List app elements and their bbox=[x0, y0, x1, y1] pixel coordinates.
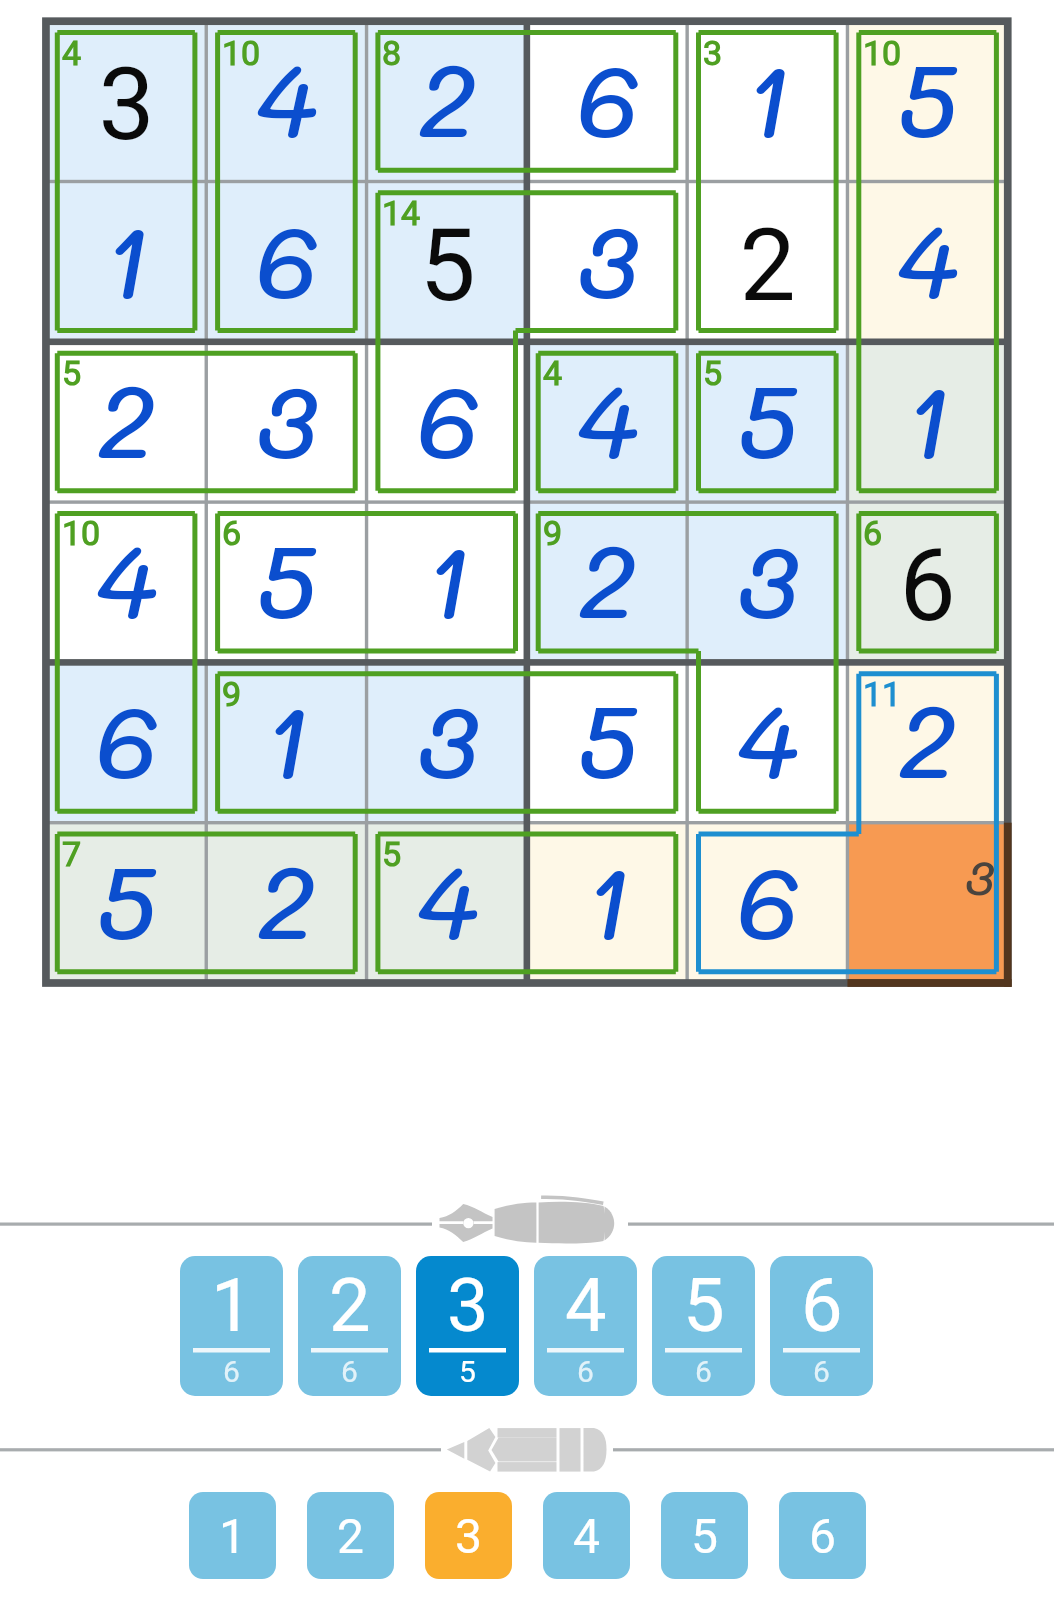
button[interactable]: 3 bbox=[206, 342, 366, 502]
button[interactable]: 2 bbox=[206, 823, 366, 983]
staticText: 6 bbox=[577, 1354, 594, 1389]
staticText: 9 bbox=[543, 513, 563, 553]
button[interactable]: 3 bbox=[687, 502, 847, 662]
staticText: 5 bbox=[691, 1508, 718, 1564]
staticText: 4 bbox=[62, 33, 82, 73]
staticText: 5 bbox=[897, 30, 958, 164]
staticText: 11 bbox=[863, 674, 902, 714]
staticText: 1 bbox=[263, 671, 309, 805]
staticText: 8 bbox=[382, 33, 402, 73]
button[interactable]: 6 bbox=[206, 182, 366, 342]
button[interactable]: 4 bbox=[687, 662, 847, 822]
staticText: 6 bbox=[341, 1354, 358, 1389]
button[interactable]: 3 bbox=[367, 662, 527, 822]
staticText: 5 bbox=[62, 353, 82, 393]
staticText: 9 bbox=[222, 674, 242, 714]
staticText: 6 bbox=[223, 1354, 240, 1389]
button[interactable]: 2 bbox=[367, 21, 527, 181]
staticText: 5 bbox=[737, 351, 798, 485]
button[interactable]: 5 bbox=[527, 662, 687, 822]
staticText: 4 bbox=[565, 1262, 607, 1349]
button[interactable]: 4 bbox=[543, 1492, 630, 1579]
staticText: 1 bbox=[103, 191, 149, 325]
staticText: 10 bbox=[222, 33, 261, 73]
button[interactable]: 5 bbox=[661, 1492, 748, 1579]
button[interactable]: 3 bbox=[425, 1492, 512, 1579]
button[interactable]: 2 bbox=[298, 1256, 401, 1396]
staticText: 2 bbox=[329, 1262, 371, 1349]
staticText: 3 bbox=[703, 33, 723, 73]
staticText: 6 bbox=[801, 1262, 843, 1349]
button[interactable]: 1 bbox=[367, 502, 527, 662]
staticText: 4 bbox=[95, 511, 158, 645]
staticText: 3 bbox=[965, 845, 994, 909]
button[interactable]: 5 bbox=[847, 21, 1007, 181]
staticText: 2 bbox=[739, 207, 796, 324]
staticText: 7 bbox=[62, 834, 82, 874]
button[interactable]: 5 bbox=[367, 182, 527, 342]
staticText: 3 bbox=[98, 46, 155, 163]
staticText: 10 bbox=[62, 513, 101, 553]
staticText: 1 bbox=[904, 351, 950, 485]
button[interactable]: 3 bbox=[46, 21, 206, 181]
button[interactable]: 1 bbox=[687, 21, 847, 181]
button[interactable]: 6 bbox=[779, 1492, 866, 1579]
staticText: 1 bbox=[584, 832, 630, 966]
staticText: 5 bbox=[459, 1354, 476, 1389]
button[interactable]: 6 bbox=[367, 342, 527, 502]
staticText: 4 bbox=[255, 30, 318, 164]
button[interactable]: 5 bbox=[652, 1256, 755, 1396]
staticText: 4 bbox=[736, 671, 799, 805]
staticText: 5 bbox=[683, 1262, 725, 1349]
staticText: 4 bbox=[416, 832, 479, 966]
button[interactable]: 1 bbox=[46, 182, 206, 342]
staticText: 5 bbox=[256, 511, 317, 645]
button[interactable]: 2 bbox=[46, 342, 206, 502]
button[interactable]: 1 bbox=[847, 342, 1007, 502]
button[interactable]: 2 bbox=[687, 182, 847, 342]
staticText: 6 bbox=[222, 513, 242, 553]
staticText: 1 bbox=[211, 1262, 253, 1349]
button[interactable]: 3 bbox=[416, 1256, 519, 1396]
staticText: 1 bbox=[219, 1508, 246, 1564]
button[interactable]: 6 bbox=[687, 823, 847, 983]
button[interactable]: 6 bbox=[770, 1256, 873, 1396]
button[interactable]: 6 bbox=[46, 662, 206, 822]
button[interactable]: 6 bbox=[527, 21, 687, 181]
button[interactable]: 2 bbox=[307, 1492, 394, 1579]
button[interactable]: 3 bbox=[527, 182, 687, 342]
staticText: 6 bbox=[95, 671, 158, 805]
staticText: 4 bbox=[573, 1508, 600, 1564]
button[interactable]: 1 bbox=[180, 1256, 283, 1396]
button[interactable]: 4 bbox=[367, 823, 527, 983]
button[interactable]: 6 bbox=[847, 502, 1007, 662]
staticText: 5 bbox=[577, 671, 638, 805]
staticText: 2 bbox=[257, 832, 315, 966]
staticText: 6 bbox=[576, 30, 639, 164]
button[interactable] bbox=[847, 823, 1007, 983]
button[interactable]: 4 bbox=[527, 342, 687, 502]
button[interactable]: 4 bbox=[46, 502, 206, 662]
button[interactable]: 5 bbox=[687, 342, 847, 502]
staticText: 10 bbox=[863, 33, 902, 73]
staticText: 3 bbox=[737, 511, 798, 645]
staticText: 5 bbox=[419, 207, 476, 324]
button[interactable]: 5 bbox=[46, 823, 206, 983]
button[interactable]: 5 bbox=[206, 502, 366, 662]
button[interactable]: 2 bbox=[527, 502, 687, 662]
staticText: 2 bbox=[578, 511, 636, 645]
staticText: 6 bbox=[813, 1354, 830, 1389]
button[interactable]: 1 bbox=[527, 823, 687, 983]
staticText: 2 bbox=[898, 671, 956, 805]
button[interactable]: 4 bbox=[534, 1256, 637, 1396]
button[interactable]: 1 bbox=[189, 1492, 276, 1579]
button[interactable]: 4 bbox=[847, 182, 1007, 342]
button[interactable]: 1 bbox=[206, 662, 366, 822]
staticText: 6 bbox=[863, 513, 883, 553]
button[interactable]: 4 bbox=[206, 21, 366, 181]
staticText: 6 bbox=[695, 1354, 712, 1389]
staticText: 6 bbox=[736, 832, 799, 966]
staticText: 3 bbox=[447, 1262, 489, 1349]
staticText: 2 bbox=[418, 30, 476, 164]
button[interactable]: 2 bbox=[847, 662, 1007, 822]
